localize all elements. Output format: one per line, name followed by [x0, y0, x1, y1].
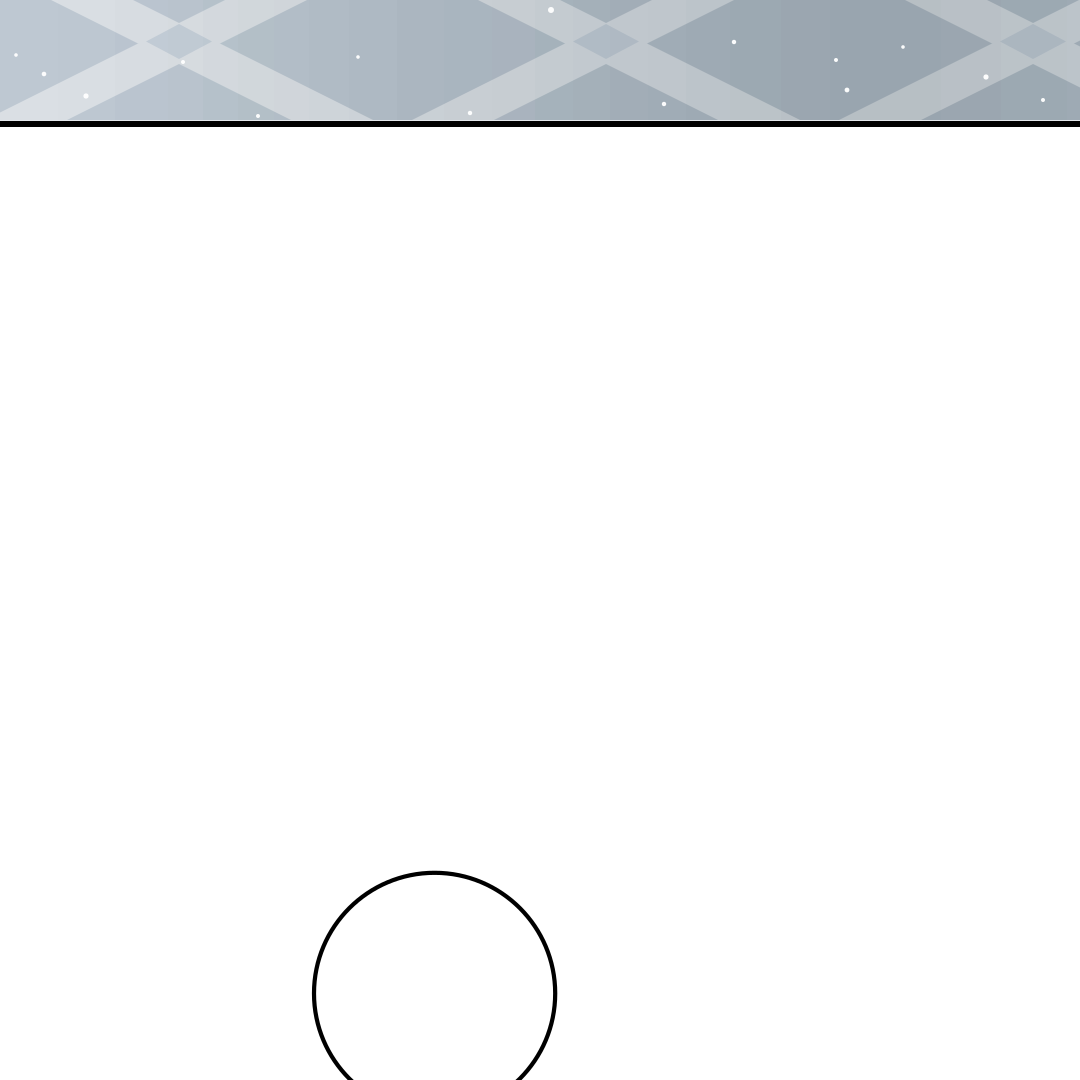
button[interactable]: Capture	[314, 1012, 555, 1080]
